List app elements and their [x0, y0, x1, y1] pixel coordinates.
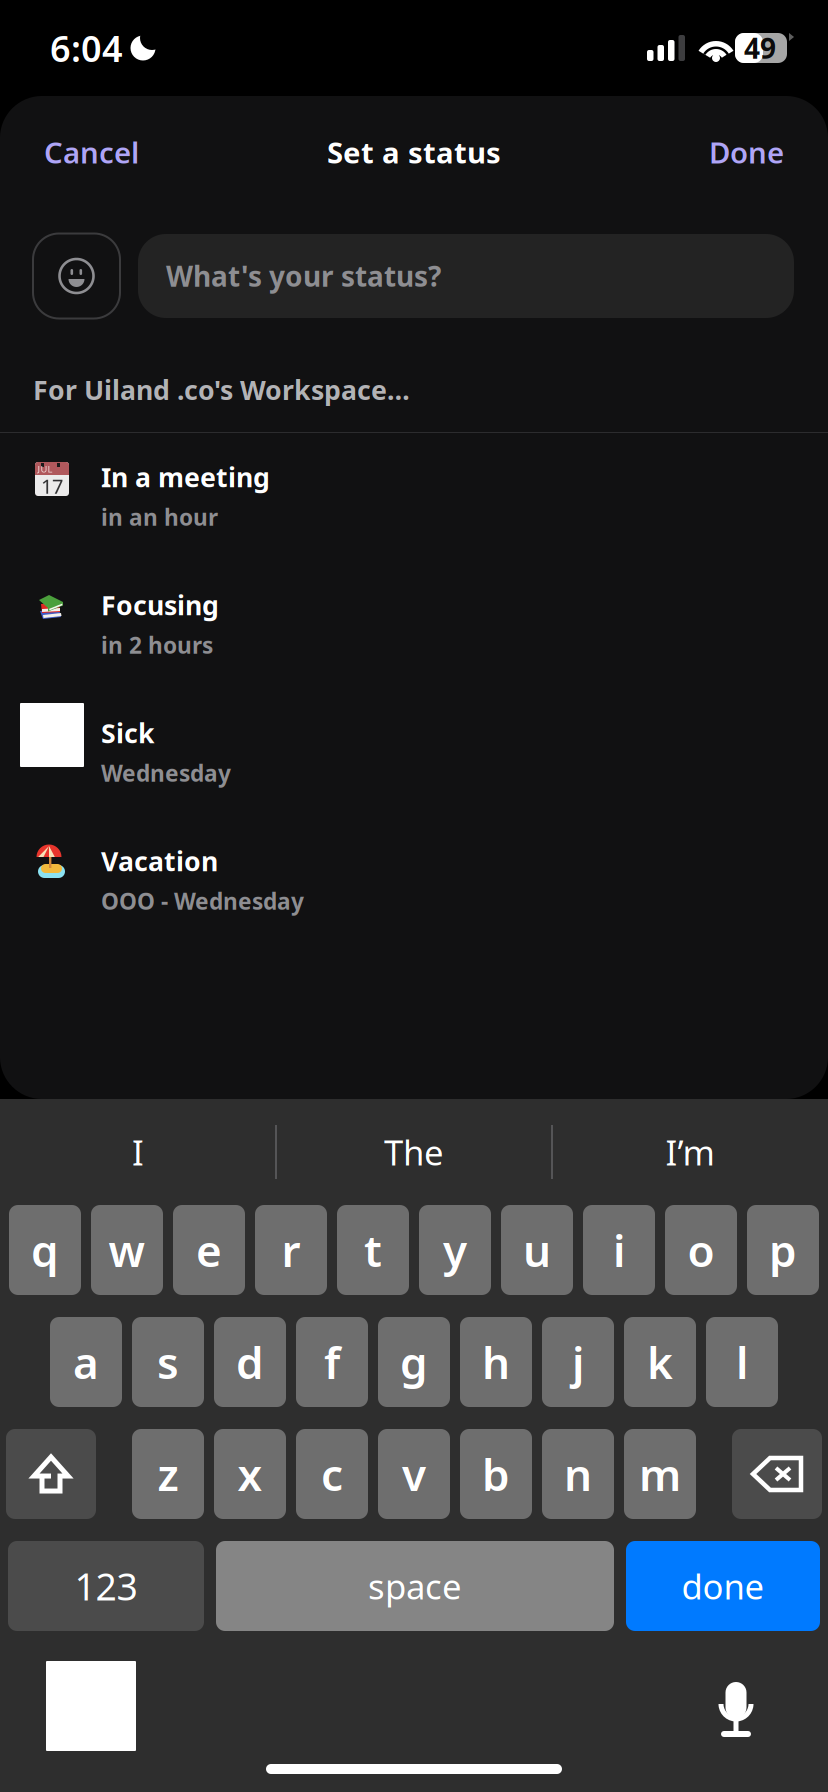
staticText: Wednesday: [101, 758, 231, 788]
staticText: o: [687, 1221, 714, 1279]
button[interactable]: Emoji keyboard: [0, 1631, 136, 1751]
staticText: I’m: [665, 1129, 714, 1175]
button[interactable]: b: [460, 1429, 532, 1519]
staticText: done: [681, 1563, 764, 1609]
staticText: Vacation: [101, 843, 218, 879]
button[interactable]: space: [216, 1541, 614, 1631]
staticText: What's your status?: [166, 257, 441, 295]
button[interactable]: f: [296, 1317, 368, 1407]
button[interactable]: done: [626, 1541, 820, 1631]
staticText: e: [196, 1221, 222, 1279]
button[interactable]: v: [378, 1429, 450, 1519]
button[interactable]: w: [91, 1205, 163, 1295]
staticText: r: [281, 1221, 300, 1279]
staticText: m: [639, 1445, 681, 1503]
button[interactable]: Choose emoji: [33, 233, 120, 318]
staticText: u: [523, 1221, 551, 1279]
staticText: q: [31, 1221, 59, 1279]
button[interactable]: n: [542, 1429, 614, 1519]
staticText: j: [572, 1333, 584, 1391]
staticText: y: [443, 1221, 467, 1279]
staticText: 123: [74, 1561, 137, 1611]
button[interactable]: z: [132, 1429, 204, 1519]
button[interactable]: y: [419, 1205, 491, 1295]
button[interactable]: What's your status?: [138, 234, 794, 318]
staticText: a: [73, 1333, 99, 1391]
button[interactable]: e: [173, 1205, 245, 1295]
button[interactable]: k: [624, 1317, 696, 1407]
staticText: 6:04: [50, 24, 123, 72]
staticText: Sick: [101, 715, 155, 751]
button[interactable]: Sick: [0, 689, 828, 817]
button[interactable]: d: [214, 1317, 286, 1407]
staticText: f: [324, 1333, 340, 1391]
staticText: in 2 hours: [101, 630, 213, 660]
staticText: v: [402, 1445, 426, 1503]
staticText: b: [482, 1445, 510, 1503]
staticText: k: [647, 1333, 673, 1391]
button[interactable]: JUL: [0, 433, 828, 561]
staticText: s: [157, 1333, 179, 1391]
button[interactable]: o: [665, 1205, 737, 1295]
button[interactable]: 123: [8, 1541, 204, 1631]
staticText: 17: [41, 473, 63, 499]
button[interactable]: c: [296, 1429, 368, 1519]
button[interactable]: x: [214, 1429, 286, 1519]
button[interactable]: l: [706, 1317, 778, 1407]
button[interactable]: t: [337, 1205, 409, 1295]
button[interactable]: Done: [689, 118, 804, 185]
button[interactable]: i: [583, 1205, 655, 1295]
button[interactable]: p: [747, 1205, 819, 1295]
staticText: x: [237, 1445, 262, 1503]
button[interactable]: I: [0, 1099, 276, 1205]
button[interactable]: j: [542, 1317, 614, 1407]
staticText: I: [132, 1129, 144, 1175]
staticText: c: [321, 1445, 343, 1503]
button[interactable]: s: [132, 1317, 204, 1407]
button[interactable]: Shift: [6, 1429, 96, 1519]
button[interactable]: q: [9, 1205, 81, 1295]
staticText: For Uiland .co's Workspace…: [33, 372, 410, 407]
button[interactable]: Focusing: [0, 561, 828, 689]
staticText: Set a status: [327, 132, 501, 171]
staticText: space: [368, 1563, 462, 1609]
staticText: p: [769, 1221, 797, 1279]
staticText: In a meeting: [101, 459, 270, 495]
button[interactable]: I’m: [552, 1099, 828, 1205]
button[interactable]: Delete: [732, 1429, 822, 1519]
button[interactable]: r: [255, 1205, 327, 1295]
button[interactable]: Vacation: [0, 817, 828, 945]
button[interactable]: g: [378, 1317, 450, 1407]
staticText: Focusing: [101, 587, 219, 623]
staticText: w: [108, 1221, 145, 1279]
staticText: 49: [744, 29, 776, 67]
button[interactable]: The: [276, 1099, 552, 1205]
staticText: n: [564, 1445, 592, 1503]
staticText: g: [400, 1333, 428, 1391]
staticText: t: [364, 1221, 382, 1279]
staticText: h: [482, 1333, 510, 1391]
staticText: The: [384, 1129, 444, 1175]
staticText: d: [236, 1333, 264, 1391]
button[interactable]: Cancel: [24, 118, 159, 185]
staticText: Done: [709, 132, 784, 171]
staticText: Cancel: [44, 132, 139, 171]
staticText: i: [613, 1221, 625, 1279]
staticText: l: [736, 1333, 748, 1391]
button[interactable]: m: [624, 1429, 696, 1519]
staticText: JUL: [37, 463, 52, 475]
button[interactable]: a: [50, 1317, 122, 1407]
staticText: z: [157, 1445, 178, 1503]
button[interactable]: u: [501, 1205, 573, 1295]
staticText: in an hour: [101, 502, 218, 532]
staticText: OOO - Wednesday: [101, 886, 304, 916]
button[interactable]: h: [460, 1317, 532, 1407]
button[interactable]: Dictate: [715, 1681, 757, 1741]
